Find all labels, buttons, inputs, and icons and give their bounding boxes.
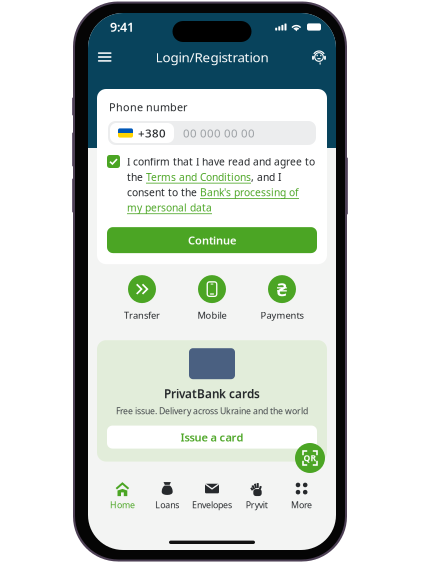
button[interactable]: ₴	[247, 275, 317, 321]
staticText: Continue	[188, 233, 236, 247]
button[interactable]: Mobile	[177, 275, 247, 321]
staticText: Mobile	[197, 309, 226, 321]
staticText: Loans	[155, 499, 179, 510]
button[interactable]: Pryvit	[234, 479, 279, 513]
staticText: Login/Registration	[156, 48, 269, 66]
button[interactable]: Menu	[98, 44, 112, 70]
staticText: I confirm that I have read and agree to	[127, 155, 315, 168]
staticText: my personal data	[127, 201, 212, 214]
button[interactable]: Issue a card	[107, 426, 317, 449]
staticText: Envelopes	[192, 499, 232, 510]
staticText: Free issue. Delivery across Ukraine and …	[116, 405, 308, 417]
staticText: +380	[138, 126, 166, 140]
button[interactable]: Support	[312, 44, 325, 70]
button[interactable]: Scan QR code	[295, 443, 325, 473]
staticText: consent to the	[127, 185, 200, 199]
staticText: More	[291, 499, 312, 510]
staticText: Transfer	[124, 309, 160, 321]
staticText: 9:41	[110, 19, 134, 35]
staticText: PrivatBank cards	[164, 386, 260, 401]
staticText: Phone number	[109, 100, 187, 114]
staticText: ₴	[276, 277, 287, 301]
button[interactable]: Bank's processing of	[200, 185, 299, 199]
staticText: the	[127, 170, 146, 184]
button[interactable]: Loans	[145, 479, 190, 513]
button[interactable]: Transfer	[107, 275, 177, 321]
staticText: , and I	[251, 170, 281, 184]
button[interactable]: my personal data	[127, 201, 212, 214]
staticText: Home	[110, 499, 135, 510]
staticText: Payments	[260, 309, 303, 321]
button[interactable]: Terms and Conditions	[146, 170, 251, 184]
button[interactable]: +380	[110, 123, 174, 143]
button[interactable]: Continue	[107, 227, 317, 253]
staticText: Terms and Conditions	[146, 170, 251, 184]
staticText: Issue a card	[180, 430, 243, 444]
button[interactable]: More	[279, 479, 324, 513]
button[interactable]: Home	[100, 479, 145, 513]
staticText: 00 000 00 00	[183, 126, 255, 140]
button[interactable]: Confirm agreement	[107, 155, 120, 168]
staticText: QR	[303, 452, 316, 463]
staticText: Pryvit	[246, 499, 268, 510]
staticText: Bank's processing of	[200, 185, 299, 199]
button[interactable]: Envelopes	[190, 479, 234, 513]
